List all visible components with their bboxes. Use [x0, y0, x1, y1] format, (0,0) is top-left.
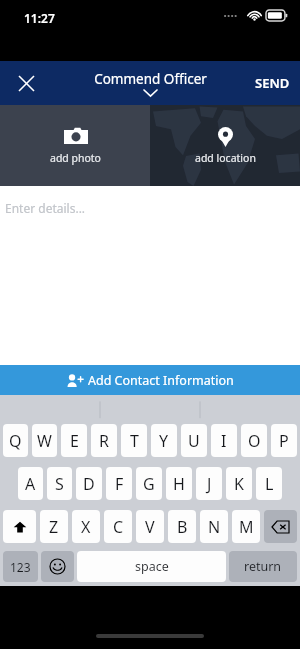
- staticText: D: [83, 473, 95, 495]
- staticText: W: [37, 430, 52, 452]
- button[interactable]: S: [47, 467, 72, 500]
- staticText: C: [113, 516, 124, 538]
- button[interactable]: SEND: [255, 74, 290, 92]
- button[interactable]: B: [168, 510, 196, 543]
- staticText: A: [25, 473, 36, 495]
- staticText: V: [145, 516, 155, 538]
- button[interactable]: G: [136, 467, 162, 500]
- staticText: Add Contact Information: [88, 372, 234, 389]
- staticText: P: [279, 430, 289, 452]
- staticText: Commend Officer: [94, 70, 207, 88]
- button[interactable]: W: [32, 424, 57, 457]
- staticText: U: [188, 430, 200, 452]
- staticText: Enter details...: [5, 200, 86, 216]
- staticText: M: [239, 516, 254, 538]
- staticText: H: [173, 473, 185, 495]
- staticText: 11:27: [24, 10, 55, 26]
- button[interactable]: Add Contact Information: [0, 365, 300, 395]
- button[interactable]: M: [232, 510, 260, 543]
- button[interactable]: L: [256, 467, 282, 500]
- staticText: add location: [195, 151, 256, 165]
- button[interactable]: Commend Officer: [94, 70, 207, 96]
- staticText: S: [55, 473, 64, 495]
- button[interactable]: Close: [8, 65, 44, 101]
- button[interactable]: D: [76, 467, 102, 500]
- button[interactable]: O: [241, 424, 267, 457]
- staticText: B: [177, 516, 188, 538]
- button[interactable]: add location: [150, 105, 300, 186]
- staticText: space: [135, 558, 169, 575]
- button[interactable]: Y: [151, 424, 177, 457]
- button[interactable]: F: [106, 467, 132, 500]
- staticText: SEND: [255, 74, 290, 92]
- button[interactable]: add photo: [0, 105, 150, 186]
- button[interactable]: X: [72, 510, 100, 543]
- button[interactable]: E: [61, 424, 87, 457]
- staticText: K: [234, 473, 244, 495]
- button[interactable]: 123: [3, 551, 38, 582]
- staticText: T: [130, 430, 139, 452]
- staticText: Z: [49, 516, 59, 538]
- button[interactable]: return: [229, 551, 297, 582]
- staticText: O: [248, 430, 261, 452]
- staticText: Y: [159, 430, 169, 452]
- button[interactable]: space: [77, 551, 226, 582]
- button[interactable]: J: [196, 467, 222, 500]
- staticText: X: [81, 516, 91, 538]
- button[interactable]: P: [271, 424, 297, 457]
- staticText: E: [70, 430, 79, 452]
- staticText: J: [207, 473, 212, 495]
- button[interactable]: T: [121, 424, 147, 457]
- button[interactable]: I: [211, 424, 237, 457]
- staticText: G: [143, 473, 155, 495]
- staticText: N: [208, 516, 221, 538]
- button[interactable]: Z: [40, 510, 68, 543]
- staticText: I: [221, 430, 227, 452]
- button[interactable]: U: [181, 424, 207, 457]
- button[interactable]: Backspace: [264, 510, 297, 543]
- button[interactable]: A: [18, 467, 43, 500]
- staticText: return: [244, 558, 282, 575]
- button[interactable]: Emoji: [41, 551, 74, 582]
- staticText: add photo: [50, 151, 101, 165]
- button[interactable]: Q: [3, 424, 28, 457]
- button[interactable]: Shift: [3, 510, 36, 543]
- staticText: 123: [10, 559, 31, 575]
- button[interactable]: Enter details...: [0, 186, 300, 365]
- button[interactable]: N: [200, 510, 228, 543]
- button[interactable]: K: [226, 467, 252, 500]
- button[interactable]: R: [91, 424, 117, 457]
- staticText: L: [265, 473, 274, 495]
- button[interactable]: V: [136, 510, 164, 543]
- staticText: R: [99, 430, 109, 452]
- staticText: Q: [9, 430, 22, 452]
- staticText: F: [115, 473, 124, 495]
- button[interactable]: C: [104, 510, 132, 543]
- button[interactable]: H: [166, 467, 192, 500]
